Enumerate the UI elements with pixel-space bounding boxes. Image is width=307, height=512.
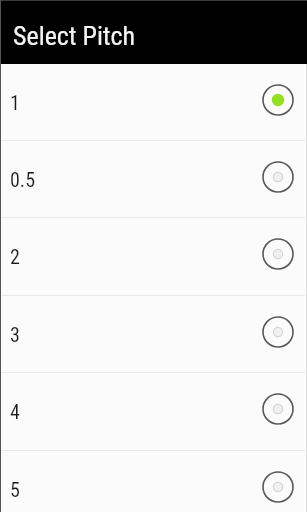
button[interactable]: 5	[0, 451, 307, 512]
other: Select 0.5	[261, 160, 295, 194]
button[interactable]: 3	[0, 296, 307, 372]
staticText: Select Pitch	[13, 21, 136, 51]
staticText: 2	[10, 245, 20, 268]
button[interactable]: 1	[0, 64, 307, 140]
button[interactable]: 0.5	[0, 141, 307, 217]
staticText: 5	[10, 478, 20, 501]
staticText: 4	[10, 400, 20, 423]
button[interactable]: 2	[0, 218, 307, 294]
other: Select 4	[261, 392, 295, 426]
staticText: 1	[10, 91, 20, 114]
other: 1 selected	[261, 83, 295, 117]
other: Select 5	[261, 470, 295, 504]
other: Select 2	[261, 237, 295, 271]
staticText: 3	[10, 323, 20, 346]
button[interactable]: 4	[0, 373, 307, 449]
other: Select 3	[261, 315, 295, 349]
staticText: 0.5	[10, 168, 36, 191]
